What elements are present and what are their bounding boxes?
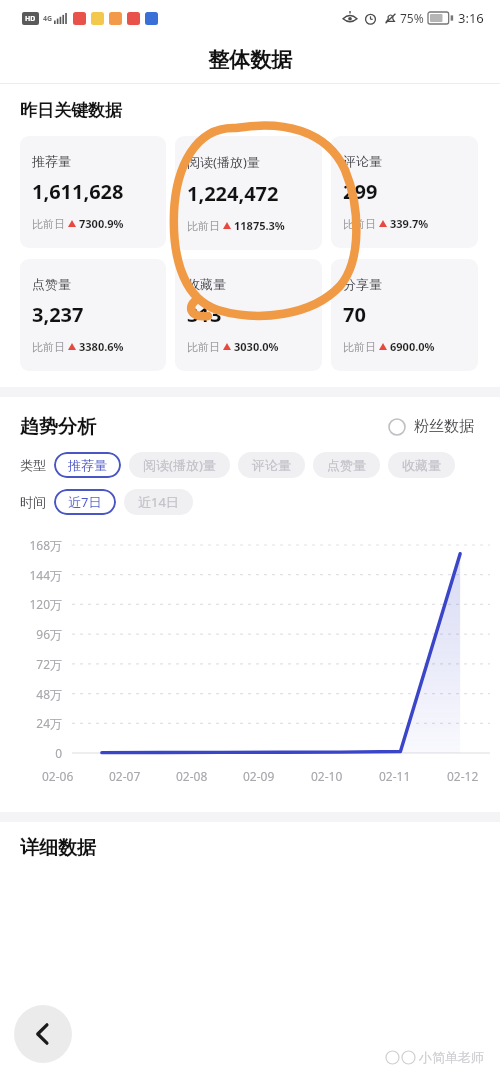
staticText: 339.7% xyxy=(390,216,429,231)
staticText: 0 xyxy=(55,745,62,761)
staticText: 1,611,628 xyxy=(32,178,124,205)
button[interactable]: 点赞量 xyxy=(313,452,380,478)
staticText: 144万 xyxy=(29,567,62,583)
staticText: 6900.0% xyxy=(390,339,435,354)
staticText: 3380.6% xyxy=(79,339,124,354)
staticText: 收藏量 xyxy=(402,457,441,473)
staticText: 近14日 xyxy=(138,493,179,511)
staticText: 收藏量 xyxy=(187,276,226,292)
staticText: 7300.9% xyxy=(79,216,124,231)
staticText: 推荐量 xyxy=(68,457,107,473)
button[interactable]: 收藏量 xyxy=(175,259,322,371)
button[interactable]: Back xyxy=(14,1005,72,1063)
button[interactable]: 评论量 xyxy=(238,452,305,478)
staticText: 昨日关键数据 xyxy=(20,100,122,121)
staticText: 阅读(播放)量 xyxy=(187,153,260,171)
button[interactable]: 近14日 xyxy=(124,489,193,515)
staticText: 点赞量 xyxy=(32,276,71,292)
button[interactable]: 近7日 xyxy=(54,489,116,515)
button[interactable]: 阅读(播放)量 xyxy=(129,452,230,478)
staticText: 4G xyxy=(43,14,53,24)
staticText: 120万 xyxy=(29,596,62,612)
staticText: 02-09 xyxy=(243,768,275,784)
staticText: 比前日 xyxy=(343,217,376,231)
staticText: 评论量 xyxy=(252,457,291,473)
button[interactable]: 评论量 xyxy=(331,136,478,248)
staticText: 02-12 xyxy=(447,768,479,784)
staticText: 11875.3% xyxy=(234,218,285,233)
staticText: 72万 xyxy=(36,656,62,672)
staticText: 02-08 xyxy=(176,768,208,784)
button[interactable]: 推荐量 xyxy=(20,136,166,248)
staticText: 阅读(播放)量 xyxy=(143,456,216,474)
staticText: 详细数据 xyxy=(20,836,96,860)
staticText: 02-07 xyxy=(109,768,141,784)
staticText: 3:16 xyxy=(458,9,484,27)
staticText: 比前日 xyxy=(32,340,65,354)
staticText: 02-10 xyxy=(311,768,343,784)
staticText: 时间 xyxy=(20,494,46,510)
staticText: 比前日 xyxy=(32,217,65,231)
staticText: 分享量 xyxy=(343,276,382,292)
staticText: 1,224,472 xyxy=(187,180,279,207)
staticText: 类型 xyxy=(20,457,46,473)
staticText: 313 xyxy=(187,301,222,328)
staticText: 299 xyxy=(343,178,378,205)
button[interactable]: 点赞量 xyxy=(20,259,166,371)
staticText: 推荐量 xyxy=(32,153,71,169)
staticText: 70 xyxy=(343,301,366,328)
button[interactable]: 收藏量 xyxy=(388,452,455,478)
staticText: 3030.0% xyxy=(234,339,279,354)
staticText: 评论量 xyxy=(343,153,382,169)
staticText: 点赞量 xyxy=(327,457,366,473)
button[interactable]: 分享量 xyxy=(331,259,478,371)
staticText: 02-06 xyxy=(42,768,74,784)
staticText: 48万 xyxy=(36,686,62,702)
staticText: 整体数据 xyxy=(208,47,292,73)
button[interactable]: 粉丝数据 xyxy=(384,413,478,440)
staticText: 趋势分析 xyxy=(20,415,96,439)
staticText: 02-11 xyxy=(379,768,411,784)
staticText: 小简单老师 xyxy=(419,1049,484,1065)
staticText: 比前日 xyxy=(187,219,220,233)
staticText: 75% xyxy=(400,10,424,26)
staticText: 比前日 xyxy=(343,340,376,354)
staticText: 24万 xyxy=(36,715,62,731)
staticText: 近7日 xyxy=(68,493,102,511)
staticText: 比前日 xyxy=(187,340,220,354)
staticText: HD xyxy=(25,14,36,24)
button[interactable]: 阅读(播放)量 xyxy=(175,136,322,250)
staticText: 3,237 xyxy=(32,301,84,328)
staticText: 96万 xyxy=(36,626,62,642)
staticText: 粉丝数据 xyxy=(414,417,474,436)
button[interactable]: 推荐量 xyxy=(54,452,121,478)
staticText: 168万 xyxy=(29,537,62,553)
